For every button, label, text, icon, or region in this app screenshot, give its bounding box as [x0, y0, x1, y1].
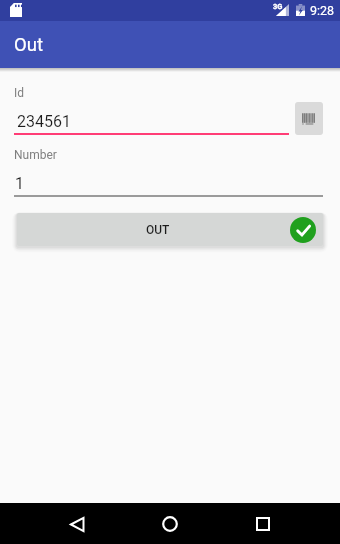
- button[interactable]: Back: [60, 507, 94, 541]
- button[interactable]: Recent apps: [246, 507, 280, 541]
- staticText: 9:28: [310, 3, 335, 18]
- button[interactable]: Scan barcode: [295, 102, 323, 135]
- staticText: Out: [14, 34, 43, 56]
- button[interactable]: Home: [153, 507, 187, 541]
- button[interactable]: Confirm: [290, 217, 316, 243]
- staticText: Id: [14, 86, 25, 100]
- staticText: 3G: [273, 2, 283, 11]
- staticText: 1: [15, 174, 24, 193]
- button[interactable]: OUT: [17, 213, 323, 246]
- staticText: Number: [14, 148, 57, 162]
- staticText: 234561: [17, 112, 71, 131]
- staticText: OUT: [146, 223, 170, 237]
